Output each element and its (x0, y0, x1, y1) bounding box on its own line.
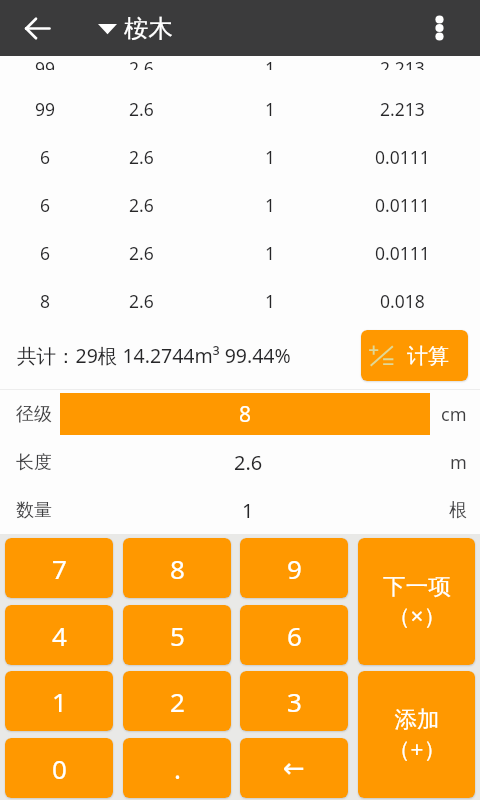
button[interactable]: 0 (5, 738, 113, 798)
button[interactable]: Back (13, 4, 61, 52)
staticText: 7 (52, 551, 67, 586)
staticText: 计算 (407, 343, 449, 369)
button[interactable]: 径级 (0, 390, 480, 438)
button[interactable]: 6 (0, 133, 480, 181)
staticText: 桉木 (124, 13, 173, 44)
button[interactable]: 6 (0, 181, 480, 229)
staticText: 2.6 (129, 289, 154, 313)
staticText: ← (283, 753, 305, 783)
staticText: 6 (287, 618, 302, 653)
staticText: 0 (52, 751, 67, 786)
button[interactable]: 8 (123, 538, 231, 598)
staticText: 径级 (16, 403, 52, 426)
button[interactable]: 计算 (361, 330, 468, 381)
staticText: 添加 （+） (388, 705, 446, 764)
button[interactable]: 添加 （+） (358, 671, 475, 798)
staticText: 0.0111 (375, 145, 430, 169)
staticText: 2.213 (380, 56, 425, 70)
button[interactable]: 6 (0, 229, 480, 277)
staticText: 6 (40, 193, 51, 217)
staticText: 1 (265, 193, 276, 217)
staticText: 2.6 (234, 449, 263, 476)
staticText: 9 (287, 551, 302, 586)
button[interactable]: More options (417, 6, 461, 50)
button[interactable]: Backspace (240, 738, 348, 798)
staticText: 根 (449, 499, 467, 522)
staticText: 2.6 (129, 145, 154, 169)
staticText: 8 (239, 400, 252, 429)
button[interactable]: 8 (0, 277, 480, 325)
staticText: 8 (170, 551, 185, 586)
staticText: 99 (35, 97, 56, 121)
staticText: 2.213 (380, 97, 425, 121)
staticText: 数量 (16, 499, 52, 522)
staticText: 6 (40, 241, 51, 265)
button[interactable]: 1 (5, 671, 113, 731)
staticText: 99 (35, 56, 56, 70)
button[interactable]: 9 (240, 538, 348, 598)
button[interactable]: 5 (123, 605, 231, 665)
staticText: 6 (40, 145, 51, 169)
staticText: m (450, 450, 467, 475)
staticText: 2 (170, 684, 185, 719)
staticText: 1 (265, 97, 276, 121)
staticText: . (174, 751, 181, 786)
staticText: 1 (265, 56, 276, 70)
button[interactable]: 长度 (0, 438, 480, 486)
staticText: 1 (265, 241, 276, 265)
staticText: 2.6 (129, 97, 154, 121)
staticText: 长度 (16, 451, 52, 474)
staticText: 下一项 （×） (383, 572, 451, 631)
button[interactable]: 3 (240, 671, 348, 731)
button[interactable]: 99 (0, 85, 480, 133)
staticText: 8 (40, 289, 51, 313)
staticText: 2.6 (129, 56, 154, 70)
staticText: 1 (265, 145, 276, 169)
staticText: 0.0111 (375, 193, 430, 217)
staticText: cm (441, 402, 467, 427)
button[interactable]: 数量 (0, 486, 480, 534)
staticText: 2.6 (129, 193, 154, 217)
button[interactable]: 6 (240, 605, 348, 665)
button[interactable]: 桉木 (98, 4, 173, 52)
button[interactable]: 下一项 （×） (358, 538, 475, 665)
button[interactable]: 2 (123, 671, 231, 731)
staticText: 2.6 (129, 241, 154, 265)
staticText: 1 (242, 497, 254, 524)
staticText: 0.018 (380, 289, 425, 313)
staticText: 3 (287, 684, 302, 719)
staticText: 1 (52, 684, 67, 719)
staticText: 4 (52, 618, 67, 653)
button[interactable]: . (123, 738, 231, 798)
staticText: 0.0111 (375, 241, 430, 265)
staticText: 5 (170, 618, 185, 653)
button[interactable]: 7 (5, 538, 113, 598)
button[interactable]: 4 (5, 605, 113, 665)
staticText: 共计：29根 14.2744m³ 99.44% (17, 342, 291, 369)
staticText: 1 (265, 289, 276, 313)
